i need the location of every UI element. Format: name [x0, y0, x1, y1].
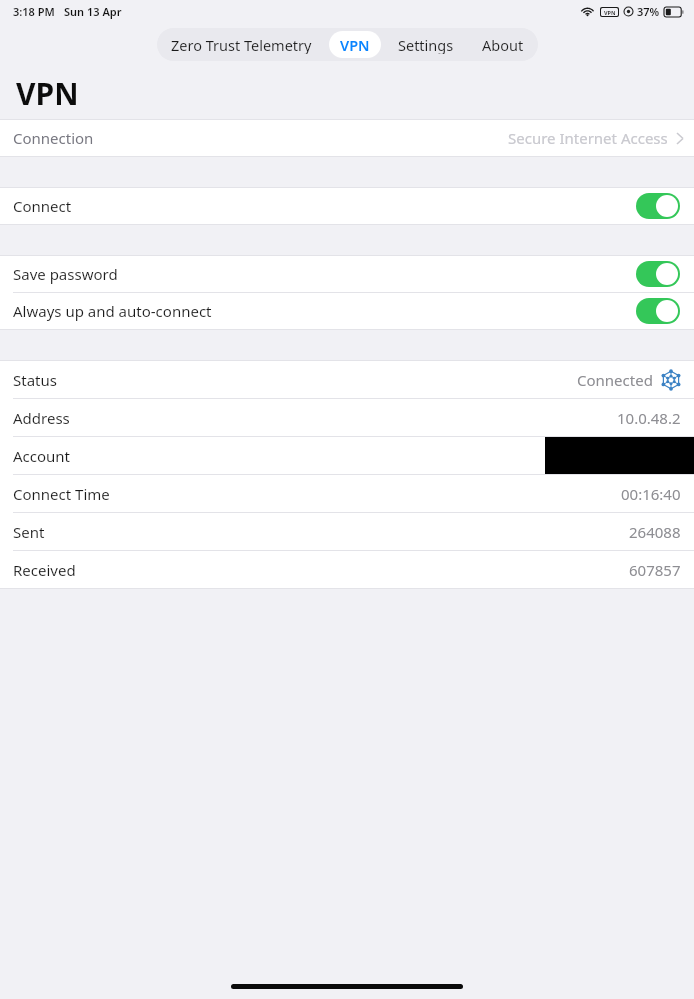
staticText: Sun 13 Apr	[64, 4, 122, 19]
button[interactable]: Sent	[0, 513, 694, 550]
button[interactable]: Account	[0, 437, 694, 474]
staticText: Save password	[13, 264, 118, 284]
staticText: 37%	[637, 4, 660, 19]
staticText: Status	[13, 370, 57, 390]
button[interactable]: Connect	[0, 188, 694, 224]
staticText: Settings	[398, 35, 454, 54]
staticText: 00:16:40	[621, 484, 681, 504]
staticText: VPN	[340, 35, 370, 54]
other: Network mesh	[660, 369, 682, 391]
button[interactable]: Save password	[0, 256, 694, 292]
staticText: 10.0.48.2	[617, 408, 681, 428]
other: Toggle on	[636, 193, 680, 219]
button[interactable]: Address	[0, 399, 694, 436]
staticText: Account	[13, 446, 71, 466]
other: Toggle on	[636, 298, 680, 324]
button[interactable]: Connection	[0, 120, 694, 156]
staticText: Address	[13, 408, 70, 428]
staticText: Secure Internet Access	[508, 128, 668, 148]
other: Toggle on	[636, 261, 680, 287]
staticText: Sent	[13, 522, 45, 542]
staticText: Connection	[13, 128, 94, 148]
staticText: Received	[13, 560, 76, 580]
staticText: VPN	[604, 9, 616, 16]
staticText: Connect	[13, 196, 72, 216]
staticText: Zero Trust Telemetry	[171, 35, 312, 54]
button[interactable]: Connect Time	[0, 475, 694, 512]
button[interactable]: VPN	[329, 31, 381, 58]
staticText: 3:18 PM	[13, 4, 55, 19]
button[interactable]: Zero Trust Telemetry	[160, 31, 323, 58]
staticText: Connect Time	[13, 484, 110, 504]
staticText: Always up and auto-connect	[13, 301, 212, 321]
button[interactable]: Always up and auto-connect	[0, 293, 694, 329]
button[interactable]: Status	[0, 361, 694, 398]
staticText: About	[482, 35, 524, 54]
staticText: 264088	[629, 522, 681, 542]
staticText: Connected	[577, 370, 653, 390]
button[interactable]: Received	[0, 551, 694, 588]
staticText: 607857	[629, 560, 681, 580]
staticText: VPN	[16, 73, 79, 114]
button[interactable]: Settings	[387, 31, 465, 58]
button[interactable]: About	[471, 31, 535, 58]
